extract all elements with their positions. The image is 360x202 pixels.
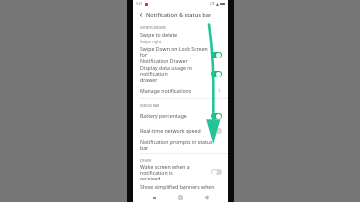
button[interactable]: Manage notifications xyxy=(133,83,228,98)
button[interactable]: Home xyxy=(176,193,185,202)
staticText: 9:41 xyxy=(136,2,143,6)
staticText: Notification prompts in status bar xyxy=(140,138,222,151)
button[interactable]: Back xyxy=(202,193,211,202)
button[interactable]: Notification prompts in status bar xyxy=(133,138,228,153)
staticText: Display data usage in notification drawe… xyxy=(140,64,211,83)
button[interactable]: Swipe to delete xyxy=(133,30,228,45)
staticText: Notification & status bar xyxy=(146,11,212,19)
button[interactable]: Battery percentage xyxy=(133,108,228,123)
button[interactable]: Wake screen when a notification is recei… xyxy=(133,163,228,180)
button[interactable]: Back xyxy=(137,11,145,19)
button[interactable]: Show simplified banners when xyxy=(133,180,228,192)
staticText: NOTIFICATIONS xyxy=(140,25,166,30)
staticText: OTHER xyxy=(140,158,152,163)
staticText: Swipe Down on Lock Screen for Notificati… xyxy=(140,45,211,64)
staticText: Real-time network speed xyxy=(140,127,201,134)
staticText: STATUS BAR xyxy=(140,103,160,108)
button[interactable]: Swipe Down on Lock Screen for Notificati… xyxy=(133,45,228,64)
button[interactable]: Recents xyxy=(150,193,159,202)
staticText: Manage notifications xyxy=(140,87,192,94)
staticText: LTE xyxy=(210,2,215,6)
button[interactable]: Real-time network speed xyxy=(133,123,228,138)
staticText: Wake screen when a notification is recei… xyxy=(140,163,211,180)
staticText: Swipe right xyxy=(140,39,162,44)
staticText: Show simplified banners when xyxy=(140,183,215,190)
staticText: Swipe to delete xyxy=(140,31,178,38)
button[interactable]: Display data usage in notification drawe… xyxy=(133,64,228,83)
staticText: Battery percentage xyxy=(140,112,187,119)
